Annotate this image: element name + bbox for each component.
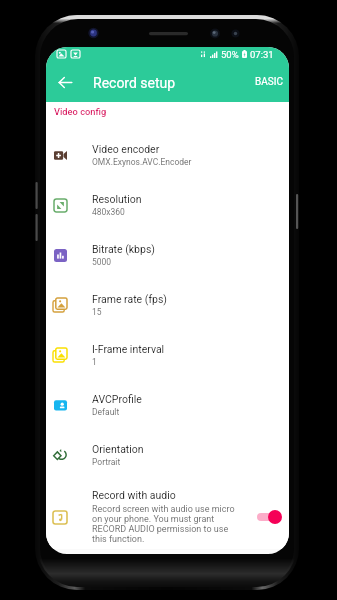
staticText: Default <box>92 407 120 417</box>
button[interactable]: BASIC <box>249 68 289 96</box>
staticText: 07:31 <box>250 49 274 60</box>
button[interactable]: I-Frame interval <box>46 330 289 380</box>
staticText: 5000 <box>92 257 112 267</box>
button[interactable]: Record with audio toggle <box>256 509 283 525</box>
staticText: Record with audio <box>92 489 176 501</box>
staticText: 480x360 <box>92 207 125 217</box>
staticText: Portrait <box>92 457 121 467</box>
staticText: Frame rate (fps) <box>92 293 168 305</box>
staticText: Bitrate (kbps) <box>92 243 155 255</box>
staticText: 1 <box>92 357 97 367</box>
staticText: Orientation <box>92 443 144 455</box>
staticText: 50% <box>221 49 239 60</box>
staticText: Record screen with audio use micro on yo… <box>92 504 235 544</box>
staticText: Video encoder <box>92 143 160 155</box>
button[interactable]: Record with audio <box>46 480 289 549</box>
staticText: Record setup <box>93 75 176 91</box>
button[interactable]: AVCProfile <box>46 380 289 430</box>
staticText: Video config <box>54 106 107 117</box>
staticText: I-Frame interval <box>92 343 165 355</box>
button[interactable]: Orientation <box>46 430 289 480</box>
button[interactable]: Resolution <box>46 180 289 230</box>
button[interactable]: Video encoder <box>46 130 289 180</box>
button[interactable]: Bitrate (kbps) <box>46 230 289 280</box>
staticText: 15 <box>92 307 102 317</box>
staticText: AVCProfile <box>92 393 142 405</box>
staticText: BASIC <box>255 76 283 88</box>
button[interactable]: Back <box>46 63 84 101</box>
staticText: OMX.Exynos.AVC.Encoder <box>92 157 192 167</box>
staticText: Resolution <box>92 193 142 205</box>
button[interactable]: Frame rate (fps) <box>46 280 289 330</box>
